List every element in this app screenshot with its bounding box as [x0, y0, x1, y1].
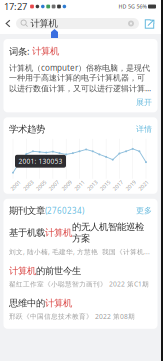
button[interactable]: Back	[1, 13, 15, 34]
button[interactable]: 计算机	[16, 18, 139, 29]
staticText: 计算机	[32, 45, 59, 57]
staticText: 2009	[61, 182, 73, 189]
staticText: 2015	[99, 182, 111, 189]
staticText: 基于机载	[9, 227, 45, 238]
staticText: 学术趋势	[9, 123, 45, 135]
staticText: 展开	[136, 97, 152, 107]
button[interactable]: 基于机载	[9, 216, 152, 260]
staticText: 2021	[137, 182, 149, 189]
button[interactable]: 详情	[136, 124, 152, 134]
staticText: 56%	[136, 3, 146, 10]
staticText: 计算机	[9, 265, 36, 277]
staticText: 5G	[128, 3, 135, 10]
staticText: 的前世今生	[36, 265, 81, 277]
button[interactable]: 计算机	[9, 260, 152, 292]
staticText: 计算机	[30, 18, 57, 29]
staticText: 词条:	[9, 45, 32, 57]
staticText: 2001: 130053	[18, 157, 62, 166]
staticText: 的无人机智能巡检方案	[72, 221, 144, 244]
button[interactable]: 思维中的	[9, 292, 152, 325]
staticText: 2005	[35, 182, 47, 189]
staticText: 详情	[136, 124, 152, 134]
staticText: 2019	[125, 182, 137, 189]
button[interactable]: 展开	[136, 97, 152, 107]
staticText: 2011	[73, 182, 85, 189]
staticText: 17:27	[4, 0, 27, 13]
staticText: 计算机	[45, 297, 72, 309]
staticText: 翟红工作室《小聪慧智力画刊》 2022 第C1期	[9, 280, 149, 288]
button[interactable]: Share	[142, 16, 158, 32]
button[interactable]: 更多	[136, 206, 152, 215]
staticText: 计算机（computer）俗称电脑，是现代一种用于高速计算的电子计算机器，可以进…	[9, 62, 152, 93]
staticText: (2760234)	[45, 205, 84, 216]
staticText: 更多	[136, 206, 152, 215]
staticText: 思维中的	[9, 297, 45, 309]
staticText: 2003	[22, 182, 34, 189]
staticText: 2001	[9, 182, 21, 189]
staticText: 期刊文章	[9, 205, 45, 216]
staticText: 2013	[86, 182, 98, 189]
staticText: 计算机	[45, 227, 72, 238]
staticText: 2017	[112, 182, 124, 189]
staticText: 刘文, 陆小楠, 毛建华, 方慧艳 我国《计算机测量…	[9, 247, 152, 256]
staticText: 2007	[48, 182, 60, 189]
staticText: 邢跃《中国信息技术教育》 2022 第08期	[9, 312, 135, 321]
staticText: HD	[118, 3, 126, 10]
